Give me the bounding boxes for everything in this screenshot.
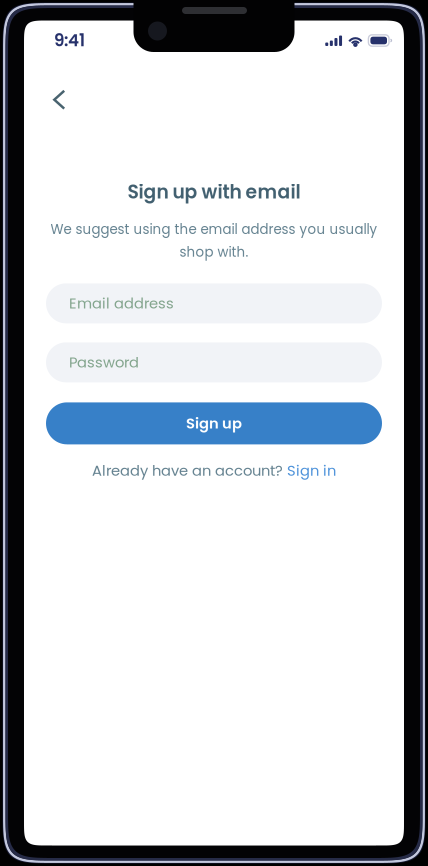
staticText: Sign up with email — [127, 179, 300, 205]
button[interactable]: Email address — [46, 283, 382, 323]
staticText: 9:41 — [54, 29, 85, 52]
staticText: We suggest using the email address you u… — [50, 220, 377, 239]
staticText: shop with. — [179, 243, 248, 261]
button[interactable]: Sign in — [287, 460, 336, 481]
staticText: Email address — [69, 293, 174, 314]
staticText: Sign in — [287, 460, 336, 481]
button[interactable]: Back — [46, 60, 79, 122]
button[interactable]: Password — [46, 342, 382, 382]
button[interactable]: Sign up — [46, 402, 382, 444]
staticText: Password — [69, 352, 139, 373]
staticText: Sign up — [186, 413, 242, 434]
staticText: Already have an account? — [92, 460, 283, 481]
